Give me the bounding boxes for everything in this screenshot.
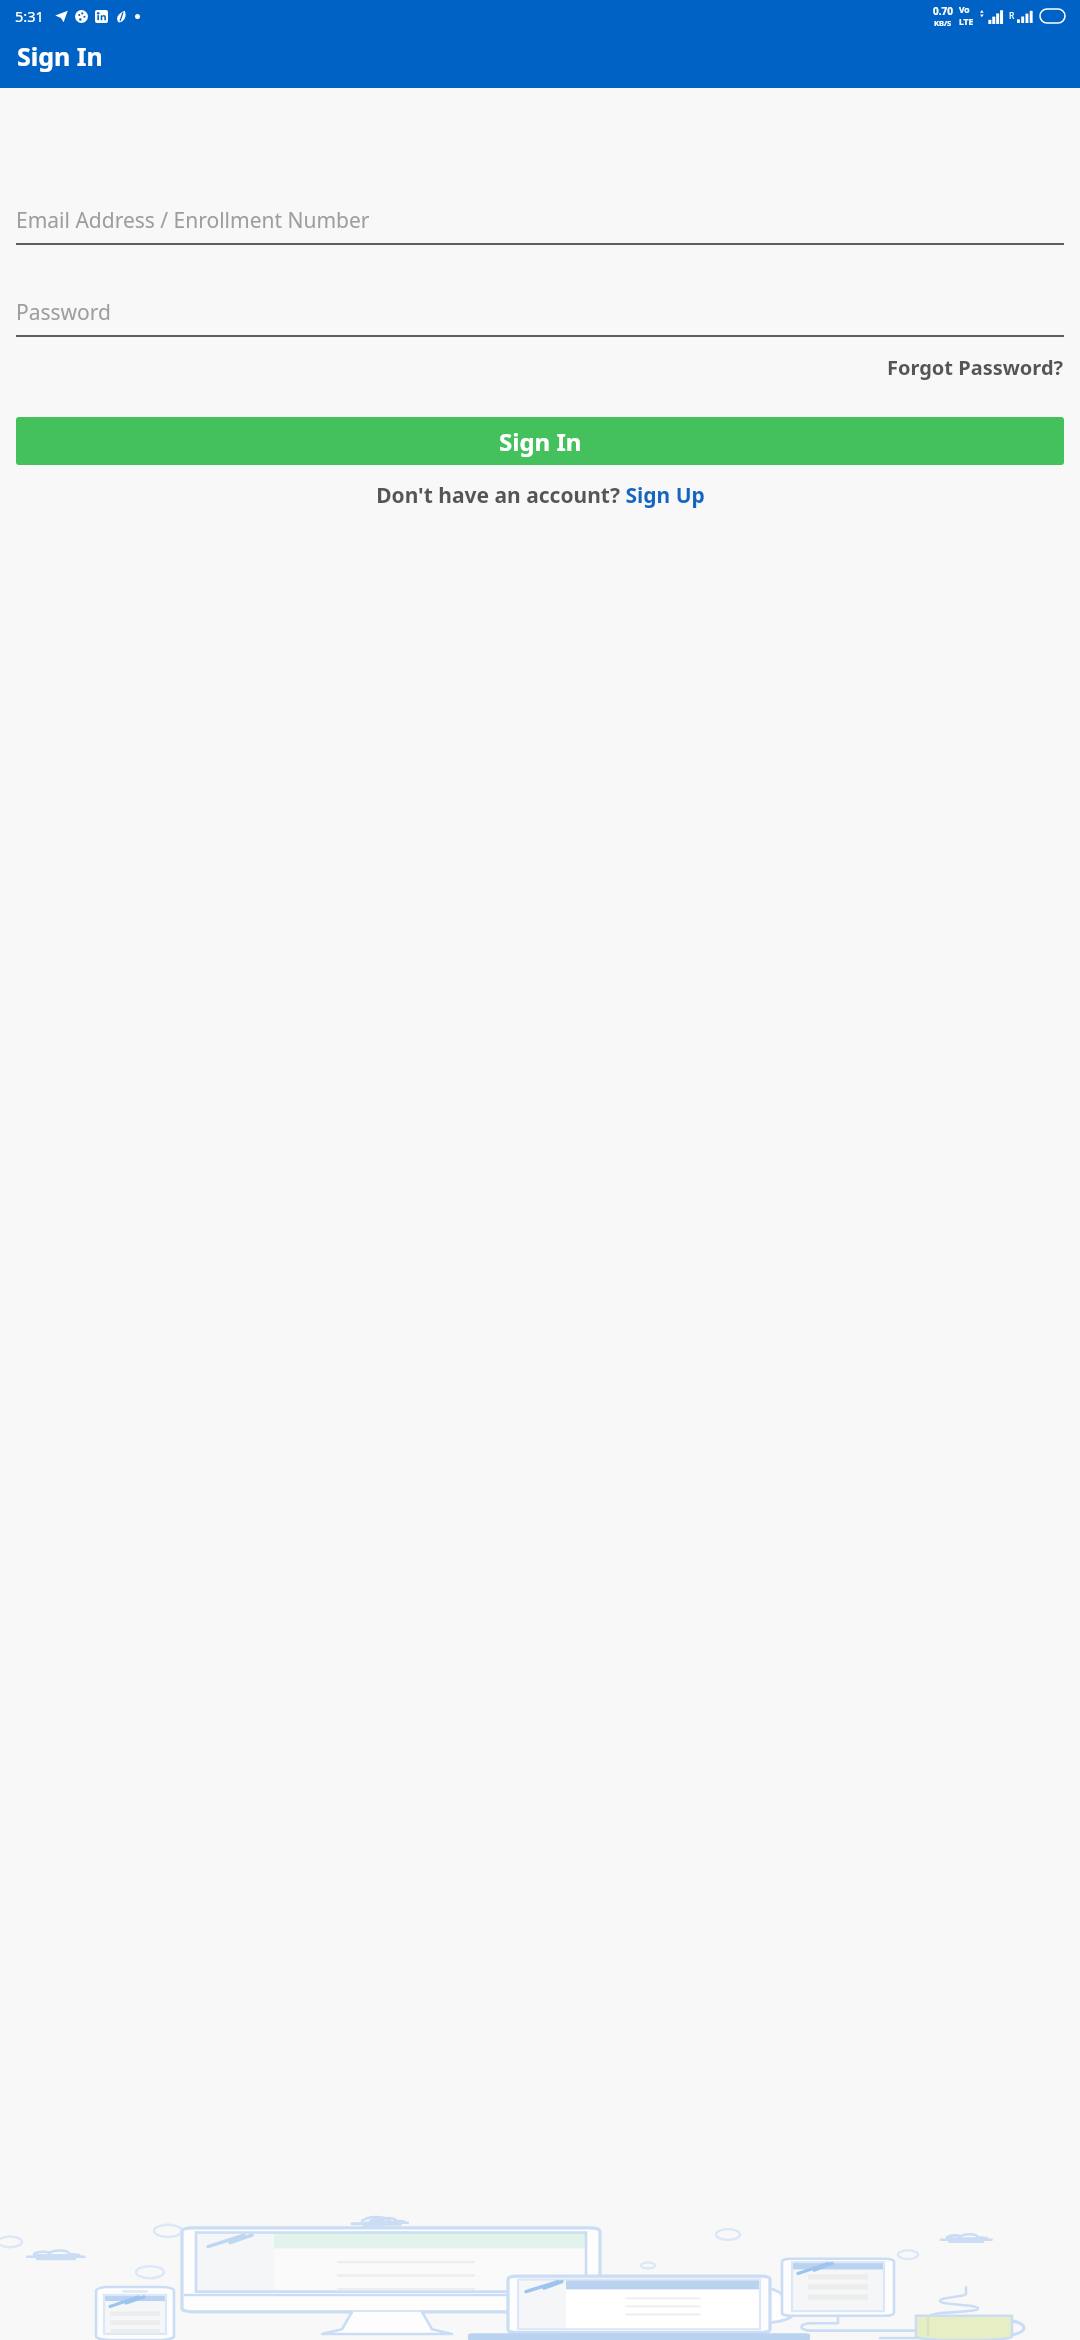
staticText: Sign In: [499, 425, 582, 458]
staticText: Sign In: [17, 39, 103, 73]
staticText: KB/S: [934, 18, 952, 28]
staticText: Vo: [959, 4, 970, 16]
staticText: LTE: [959, 16, 974, 28]
staticText: Don't have an account? Sign Up: [376, 481, 705, 510]
staticText: Email Address / Enrollment Number: [16, 206, 370, 235]
button[interactable]: Password: [16, 298, 1064, 337]
staticText: R: [1009, 10, 1015, 22]
button[interactable]: Forgot Password?: [887, 351, 1064, 384]
staticText: Password: [16, 298, 111, 327]
staticText: 5:31: [15, 6, 44, 26]
button[interactable]: Sign In: [16, 417, 1064, 465]
button[interactable]: Email Address / Enrollment Number: [16, 206, 1064, 245]
button[interactable]: Don't have an account? Sign Up: [16, 481, 1064, 510]
staticText: 0.70: [933, 4, 953, 18]
